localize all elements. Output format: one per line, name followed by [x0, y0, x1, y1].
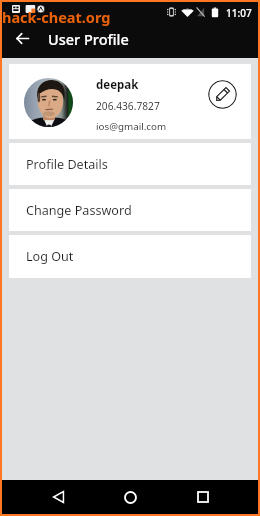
button[interactable]: Profile Details	[9, 143, 251, 185]
button[interactable]: Back	[3, 22, 43, 58]
button[interactable]: Back	[41, 480, 75, 514]
button[interactable]: Recents	[186, 480, 220, 514]
staticText: Change Password	[26, 202, 132, 219]
button[interactable]: Edit profile	[208, 80, 237, 109]
button[interactable]: deepak	[9, 64, 251, 139]
staticText: Log Out	[26, 248, 74, 265]
staticText: 206.436.7827	[96, 99, 160, 113]
staticText: ios@gmail.com	[96, 120, 167, 133]
staticText: 11:07	[226, 6, 252, 20]
staticText: User Profile	[48, 29, 129, 49]
staticText: Profile Details	[26, 156, 108, 173]
staticText: deepak	[96, 77, 139, 93]
staticText: hack-cheat.org	[2, 7, 111, 27]
button[interactable]: Change Password	[9, 189, 251, 231]
button[interactable]: Home	[113, 480, 147, 514]
button[interactable]: Log Out	[9, 235, 251, 278]
